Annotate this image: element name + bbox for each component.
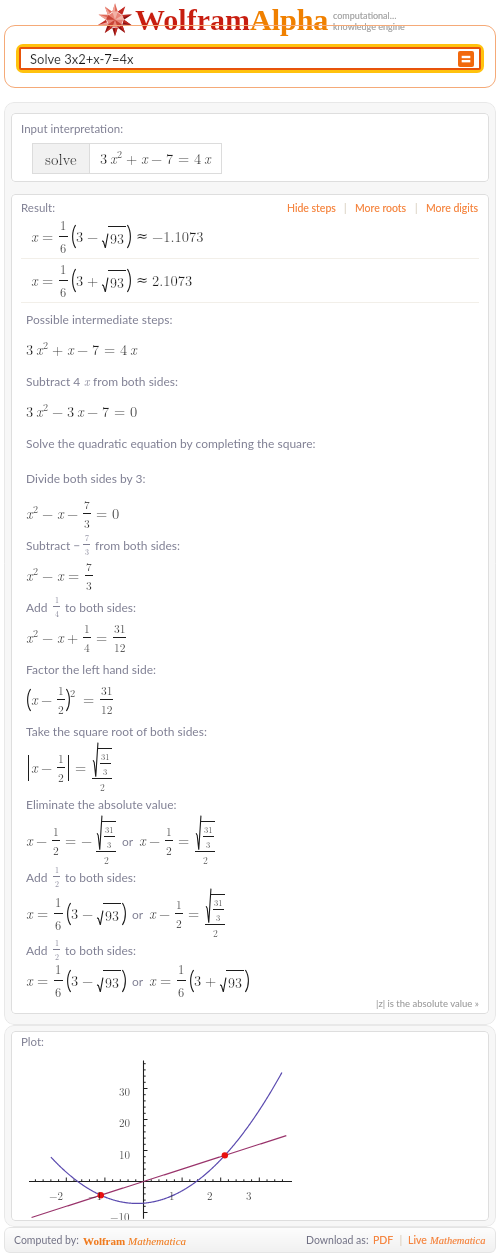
staticText: 10	[119, 1147, 130, 1163]
staticText: x	[26, 830, 33, 851]
staticText: −	[82, 903, 94, 924]
staticText: 1	[169, 1188, 175, 1204]
staticText: 6	[55, 916, 62, 934]
staticText: Input interpretation:	[21, 122, 124, 136]
staticText: 2	[55, 951, 59, 962]
staticText: 2	[55, 878, 59, 889]
staticText: −2	[49, 1188, 64, 1204]
staticText: x	[130, 339, 137, 360]
staticText: 3	[216, 911, 221, 923]
staticText: 3	[107, 838, 112, 850]
staticText: x	[204, 148, 211, 169]
staticText: Factor the left hand side:	[26, 662, 156, 676]
staticText: x	[57, 627, 64, 648]
staticText: 1	[55, 960, 62, 978]
staticText: −	[81, 830, 93, 851]
staticText: 6	[178, 983, 185, 1001]
button[interactable]: Compute	[458, 51, 474, 67]
staticText: 2	[33, 626, 39, 640]
staticText: 4	[84, 639, 90, 655]
staticText: Download as:	[306, 1234, 369, 1247]
staticText: x	[26, 503, 33, 524]
staticText: 7	[86, 558, 92, 574]
staticText: solve	[45, 148, 77, 169]
staticText: 93	[110, 228, 124, 248]
staticText: computational…	[333, 10, 397, 21]
staticText: 93	[105, 972, 119, 992]
staticText: x	[77, 401, 84, 422]
staticText: −	[77, 339, 89, 360]
staticText: −	[151, 148, 163, 169]
staticText: −	[41, 757, 53, 778]
staticText: from both sides:	[90, 374, 178, 388]
button[interactable]: More digits	[426, 202, 479, 215]
staticText: x	[67, 339, 74, 360]
staticText: 0	[130, 401, 138, 422]
staticText: x	[141, 148, 148, 169]
staticText: −10	[110, 1209, 130, 1221]
button[interactable]: PDF	[373, 1234, 394, 1247]
staticText: −	[42, 627, 54, 648]
button[interactable]: More roots	[355, 202, 407, 215]
staticText: Wolfram	[83, 1235, 126, 1247]
staticText: 4	[194, 148, 202, 169]
staticText: x	[149, 970, 156, 991]
staticText: Subtract 4	[26, 374, 84, 388]
staticText: 6	[60, 283, 67, 301]
staticText: Subtract −	[26, 538, 81, 552]
staticText: =	[37, 903, 49, 924]
staticText: Live	[408, 1234, 427, 1247]
staticText: or	[132, 974, 144, 988]
staticText: 1	[55, 893, 62, 911]
staticText: x	[84, 372, 90, 389]
staticText: x	[110, 148, 117, 169]
staticText: x	[31, 226, 38, 247]
staticText: 2	[43, 338, 49, 352]
staticText: Possible intermediate steps:	[26, 312, 173, 326]
staticText: =	[42, 270, 54, 291]
staticText: =	[83, 689, 95, 710]
staticText: 3	[194, 970, 202, 991]
staticText: Add	[26, 943, 51, 957]
staticText: =	[160, 970, 172, 991]
staticText: −	[36, 830, 48, 851]
staticText: −	[67, 503, 79, 524]
staticText: |	[336, 202, 355, 215]
staticText: 2	[166, 842, 172, 858]
staticText: =	[68, 565, 80, 586]
staticText: to both sides:	[62, 943, 137, 957]
staticText: 31	[101, 750, 110, 762]
staticText: or	[122, 834, 134, 848]
staticText: 3	[26, 339, 34, 360]
staticText: −	[42, 503, 54, 524]
staticText: 93	[228, 972, 242, 992]
staticText: 2	[70, 685, 76, 700]
button[interactable]: Hide steps	[287, 202, 336, 215]
button[interactable]: Solve 3x2+x-7=4x	[21, 49, 479, 68]
staticText: 3	[76, 226, 84, 247]
staticText: |z| is the absolute value »	[376, 998, 479, 1009]
staticText: =	[104, 339, 116, 360]
staticText: x	[26, 903, 33, 924]
staticText: from both sides:	[92, 538, 180, 552]
staticText: x	[36, 339, 43, 360]
staticText: 20	[119, 1115, 130, 1131]
staticText: Mathematica	[430, 1235, 486, 1247]
staticText: 3	[71, 970, 79, 991]
staticText: 3	[85, 546, 89, 557]
staticText: =	[178, 148, 190, 169]
staticText: Result:	[21, 201, 56, 215]
staticText: x	[57, 565, 64, 586]
staticText: 0	[112, 503, 120, 524]
staticText: Eliminate the absolute value:	[26, 797, 177, 811]
staticText: x	[26, 565, 33, 586]
staticText: Plot:	[21, 1035, 44, 1049]
button[interactable]: Live	[408, 1234, 486, 1247]
staticText: =	[37, 970, 49, 991]
staticText: knowledge engine	[333, 21, 405, 32]
staticText: 2	[176, 915, 182, 931]
staticText: 1	[84, 620, 90, 636]
staticText: 2	[117, 147, 123, 161]
staticText: 2	[58, 701, 64, 717]
staticText: 2	[207, 1188, 213, 1204]
